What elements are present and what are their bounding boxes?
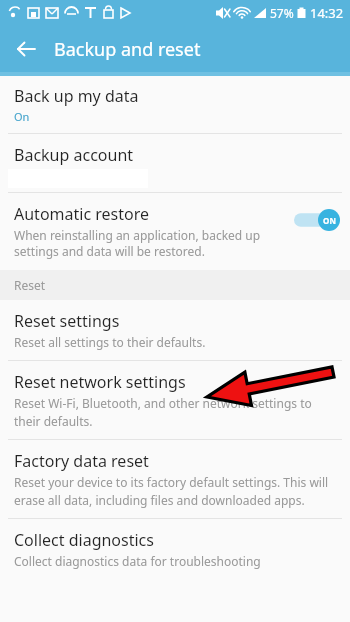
- staticText: Backup account: [14, 144, 134, 166]
- staticText: ON: [323, 215, 336, 226]
- staticText: Automatic restore: [14, 203, 149, 225]
- staticText: Reset: [14, 277, 46, 293]
- staticText: Collect diagnostics: [14, 529, 154, 551]
- staticText: 57%: [270, 5, 294, 21]
- button[interactable]: Reset settings: [0, 300, 350, 360]
- button[interactable]: Back: [6, 29, 46, 69]
- staticText: Reset Wi-Fi, Bluetooth, and other networ…: [14, 395, 336, 429]
- staticText: Reset your device to its factory default…: [14, 474, 336, 508]
- button[interactable]: Factory data reset: [0, 440, 350, 518]
- staticText: Reset network settings: [14, 371, 186, 393]
- button[interactable]: Reset network settings: [0, 361, 350, 439]
- button[interactable]: Automatic restore: [0, 193, 350, 270]
- staticText: 14:32: [310, 4, 344, 22]
- staticText: On: [14, 109, 30, 124]
- staticText: Backup and reset: [54, 37, 201, 62]
- staticText: Reset all settings to their defaults.: [14, 334, 206, 350]
- staticText: When reinstalling an application, backed…: [14, 227, 284, 260]
- staticText: Factory data reset: [14, 450, 149, 472]
- button[interactable]: Backup account: [0, 134, 350, 192]
- staticText: Collect diagnostics data for troubleshoo…: [14, 553, 261, 569]
- staticText: Reset settings: [14, 310, 120, 332]
- button[interactable]: Collect diagnostics: [0, 519, 350, 579]
- staticText: Back up my data: [14, 85, 139, 107]
- button[interactable]: Automatic restore toggle, on: [294, 209, 340, 231]
- button[interactable]: Back up my data: [0, 76, 350, 133]
